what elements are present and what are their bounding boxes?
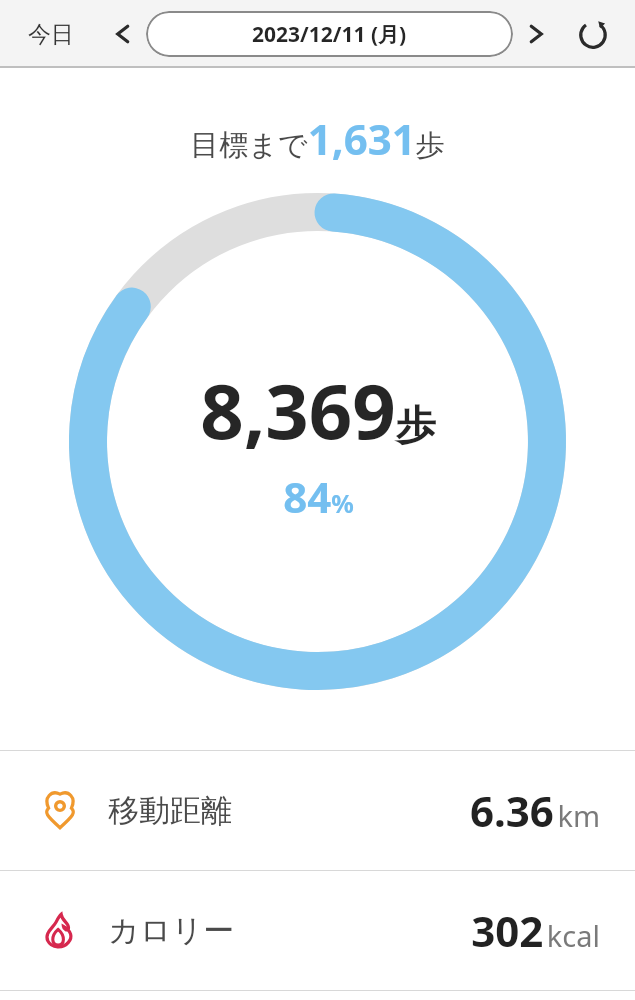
button[interactable]: 2023/12/11 (月): [146, 11, 513, 57]
button[interactable]: Previous day: [102, 14, 142, 54]
staticText: カロリー: [108, 911, 235, 950]
button[interactable]: Distance: [0, 751, 635, 870]
button[interactable]: Refresh: [571, 12, 615, 56]
staticText: 今日: [28, 20, 74, 49]
button[interactable]: 今日: [20, 14, 82, 55]
staticText: 8,369歩: [200, 358, 436, 462]
button[interactable]: Calories: [0, 871, 635, 990]
other: Distance: [38, 789, 82, 833]
staticText: 目標まで1,631歩: [190, 110, 445, 167]
staticText: 2023/12/11 (月): [252, 20, 407, 49]
staticText: 6.36 km: [469, 782, 600, 839]
staticText: 302 kcal: [471, 902, 600, 959]
other: Calories: [38, 909, 82, 953]
staticText: 移動距離: [108, 791, 232, 830]
button[interactable]: Next day: [517, 14, 557, 54]
staticText: 84%: [283, 468, 354, 525]
